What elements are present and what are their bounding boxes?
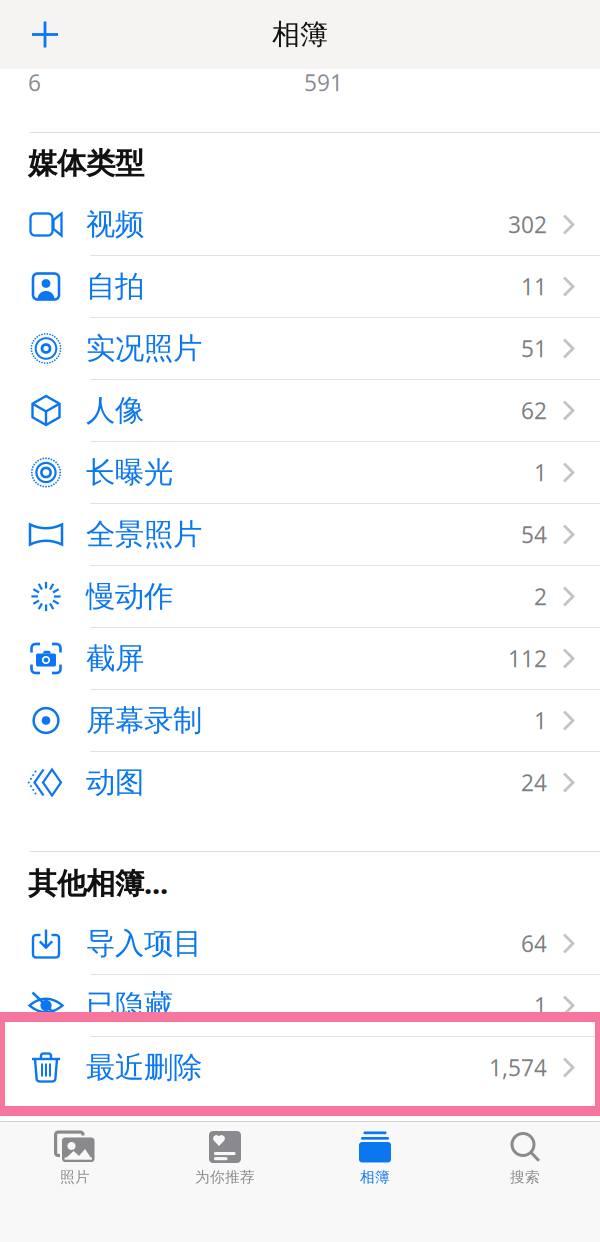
staticText: 6 xyxy=(28,67,41,97)
staticText: 相簿 xyxy=(272,17,328,52)
button[interactable]: 视频 xyxy=(0,194,600,256)
button[interactable]: 长曝光 xyxy=(0,442,600,504)
staticText: 慢动作 xyxy=(86,578,173,614)
staticText: 302 xyxy=(508,209,547,239)
button[interactable]: 最近删除 xyxy=(0,1037,600,1099)
staticText: 人像 xyxy=(86,392,144,428)
button[interactable]: 新建相簿 xyxy=(0,0,79,68)
staticText: 为你推荐 xyxy=(195,1168,255,1186)
button[interactable]: 已隐藏 xyxy=(0,975,600,1037)
staticText: 591 xyxy=(304,67,343,97)
staticText: 51 xyxy=(521,333,547,363)
button[interactable]: 动图 xyxy=(0,752,600,814)
staticText: 截屏 xyxy=(86,640,144,676)
button[interactable]: 截屏 xyxy=(0,628,600,690)
staticText: 已隐藏 xyxy=(86,987,173,1023)
staticText: 1 xyxy=(534,990,547,1020)
staticText: 11 xyxy=(521,271,547,301)
button[interactable]: 照片 xyxy=(0,1118,150,1196)
staticText: 其他相簿... xyxy=(28,863,168,902)
staticText: 全景照片 xyxy=(86,516,202,552)
button[interactable]: 为你推荐 xyxy=(150,1118,300,1196)
staticText: 62 xyxy=(521,395,547,425)
staticText: 最近删除 xyxy=(86,1049,202,1085)
staticText: 1 xyxy=(534,457,547,487)
button[interactable]: 人像 xyxy=(0,380,600,442)
button[interactable]: 慢动作 xyxy=(0,566,600,628)
button[interactable]: 屏幕录制 xyxy=(0,690,600,752)
button[interactable]: 相簿 xyxy=(300,1118,450,1196)
button[interactable]: 全景照片 xyxy=(0,504,600,566)
staticText: 搜索 xyxy=(510,1168,540,1186)
staticText: 导入项目 xyxy=(86,925,202,961)
staticText: 照片 xyxy=(60,1168,90,1186)
staticText: 2 xyxy=(534,581,547,611)
staticText: 64 xyxy=(521,928,547,958)
button[interactable]: 自拍 xyxy=(0,256,600,318)
staticText: 1,574 xyxy=(489,1052,547,1082)
button[interactable]: 实况照片 xyxy=(0,318,600,380)
staticText: 相簿 xyxy=(360,1168,390,1186)
button[interactable]: 搜索 xyxy=(450,1118,600,1196)
staticText: 媒体类型 xyxy=(28,145,144,181)
staticText: 24 xyxy=(521,767,547,797)
staticText: 屏幕录制 xyxy=(86,702,202,738)
staticText: 54 xyxy=(521,519,547,549)
staticText: 动图 xyxy=(86,764,144,800)
button[interactable]: 导入项目 xyxy=(0,913,600,975)
staticText: 1 xyxy=(534,705,547,735)
staticText: 112 xyxy=(508,643,547,673)
staticText: 长曝光 xyxy=(86,454,173,490)
staticText: 自拍 xyxy=(86,268,144,304)
staticText: 视频 xyxy=(86,206,144,242)
staticText: 实况照片 xyxy=(86,330,202,366)
